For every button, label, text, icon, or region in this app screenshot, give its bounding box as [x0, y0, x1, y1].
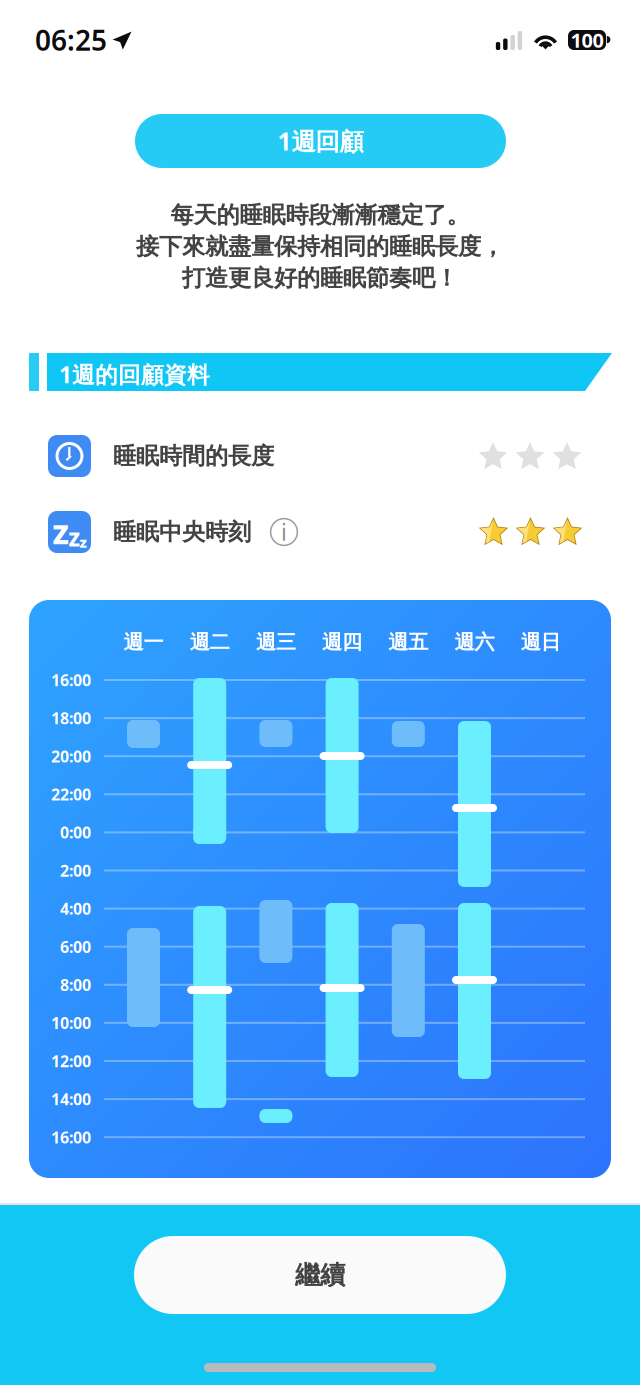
staticText: 睡眠時間的長度	[113, 441, 274, 470]
staticText: 14:00	[51, 1088, 91, 1110]
staticText: 10:00	[51, 1012, 91, 1033]
staticText: 週四	[322, 629, 362, 655]
staticText: 06:25	[35, 21, 107, 59]
staticText: 睡眠中央時刻	[113, 517, 251, 546]
staticText: i	[281, 517, 287, 547]
staticText: 100	[570, 27, 603, 53]
button[interactable]: Z	[0, 504, 640, 560]
staticText: 8:00	[60, 974, 91, 995]
staticText: 4:00	[60, 898, 91, 919]
staticText: 22:00	[51, 784, 91, 805]
staticText: 打造更良好的睡眠節奏吧！	[182, 263, 458, 292]
staticText: 1週回顧	[277, 124, 363, 157]
staticText: 繼續	[295, 1259, 345, 1291]
button[interactable]: 繼續	[134, 1236, 506, 1314]
staticText: 2:00	[60, 860, 91, 881]
staticText: 接下來就盡量保持相同的睡眠長度，	[136, 232, 504, 261]
staticText: 0:00	[60, 822, 91, 843]
staticText: 週三	[256, 629, 296, 655]
staticText: 20:00	[51, 746, 91, 767]
staticText: Z	[68, 527, 79, 552]
staticText: 6:00	[60, 936, 91, 957]
button[interactable]: 1週回顧	[135, 114, 506, 168]
staticText: 每天的睡眠時段漸漸穩定了。	[170, 200, 469, 229]
staticText: 1週的回顧資料	[59, 359, 210, 390]
staticText: Z	[52, 516, 68, 552]
staticText: 週二	[190, 629, 230, 655]
staticText: 16:00	[51, 1127, 91, 1148]
staticText: 週五	[388, 629, 428, 655]
staticText: 週一	[123, 629, 163, 655]
staticText: z	[79, 532, 86, 552]
staticText: 週六	[454, 629, 494, 655]
staticText: 18:00	[51, 707, 91, 729]
button[interactable]: 睡眠時間的長度	[0, 428, 640, 484]
staticText: 16:00	[51, 669, 91, 691]
staticText: 週日	[521, 629, 561, 655]
staticText: 12:00	[51, 1050, 91, 1072]
